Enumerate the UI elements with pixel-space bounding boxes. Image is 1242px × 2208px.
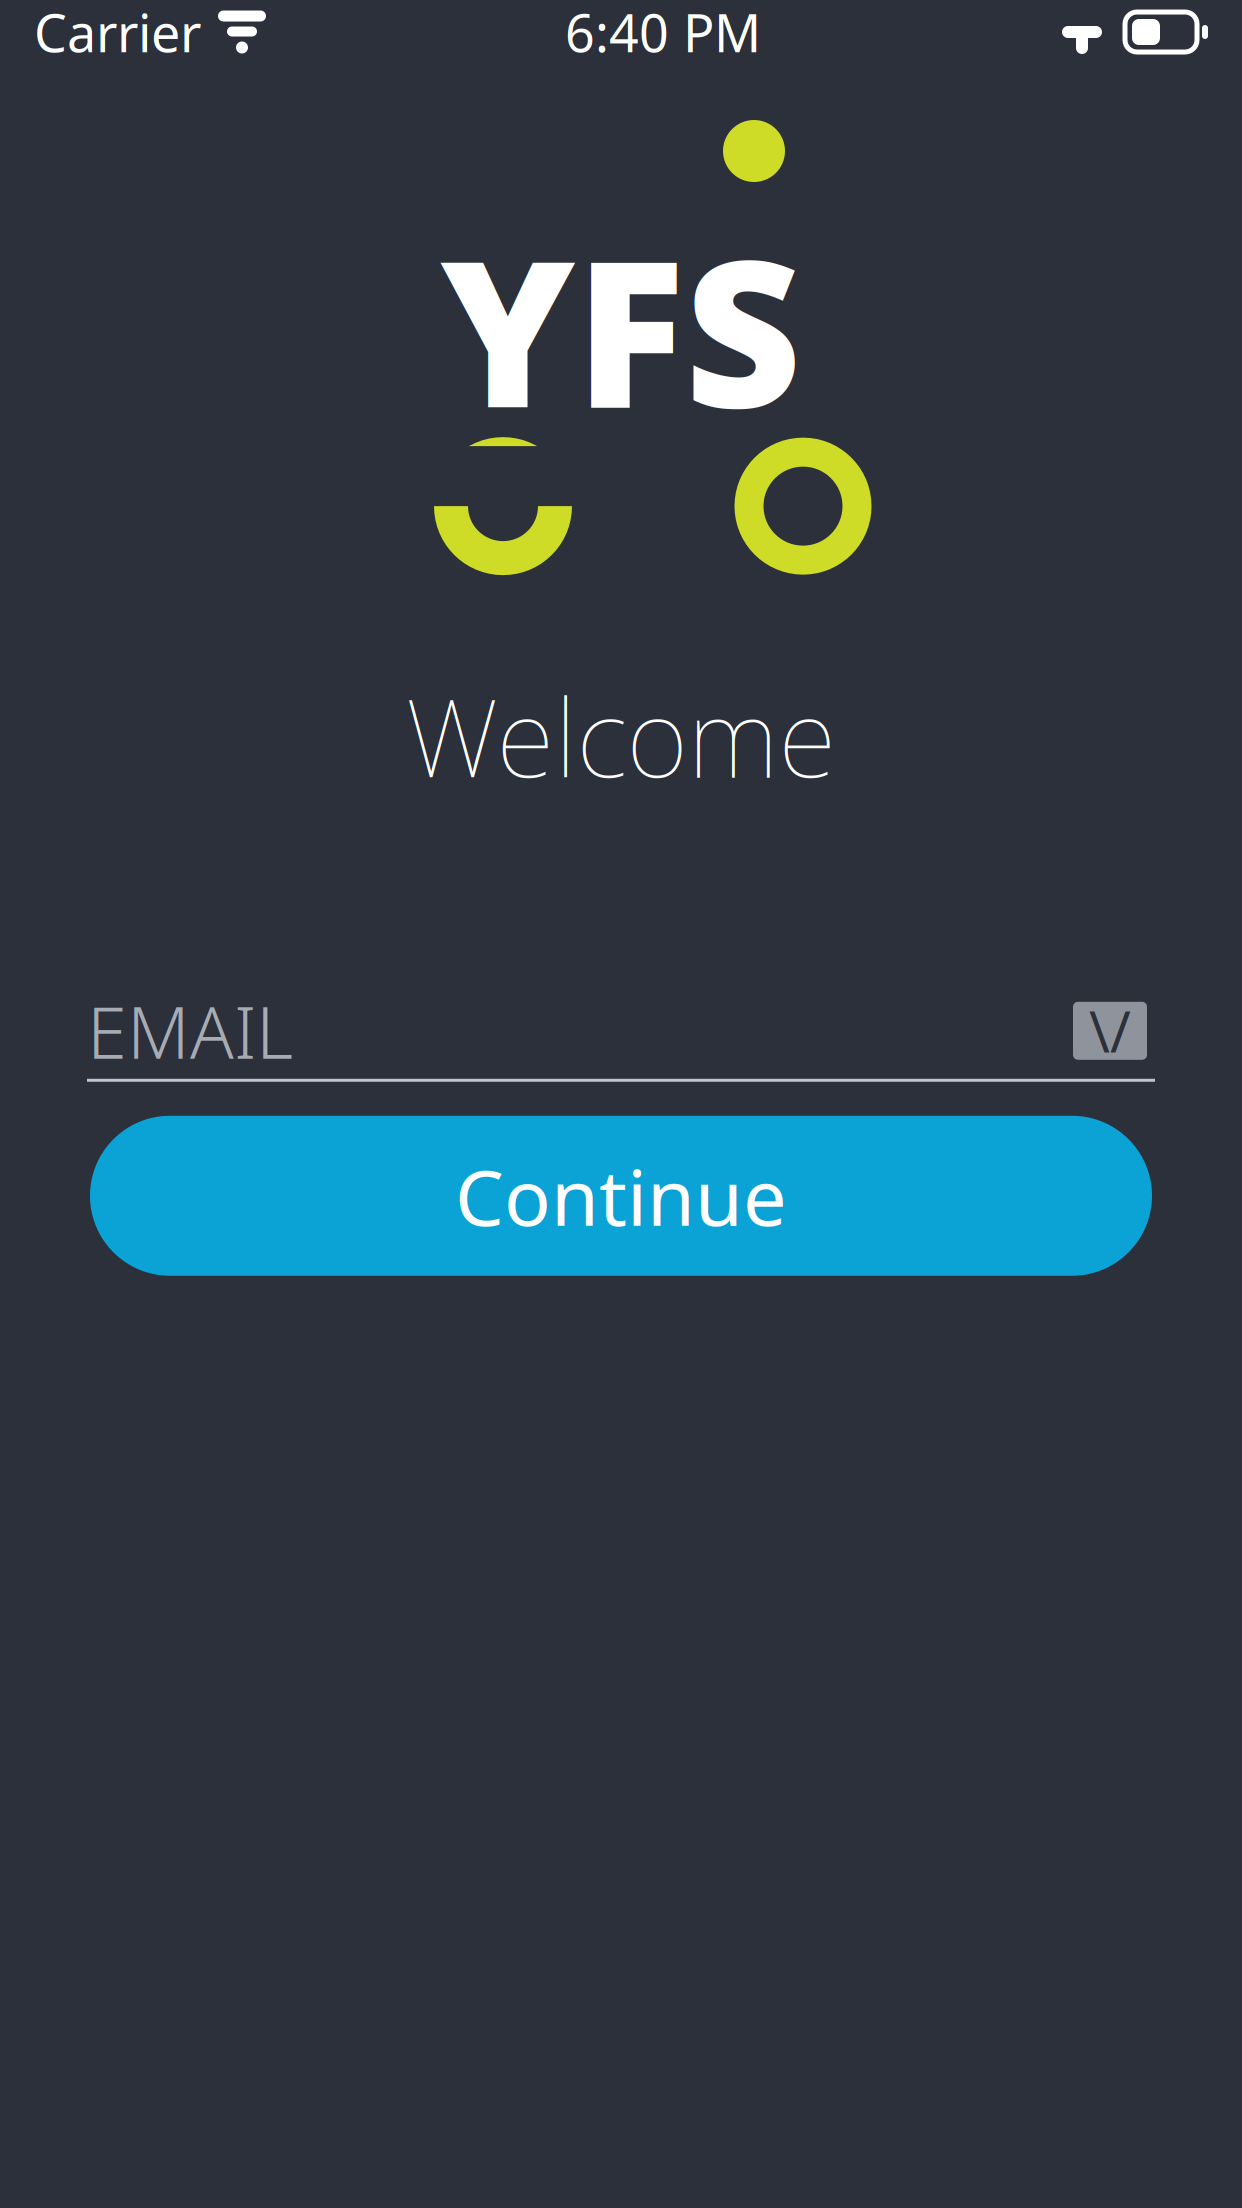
staticText: Welcome [405,665,836,807]
staticText: \/ [1089,994,1131,1068]
staticText: Carrier [34,0,201,67]
staticText: 6:40 PM [565,0,761,67]
button[interactable]: Continue [90,1116,1152,1276]
staticText: Continue [455,1144,787,1247]
staticText: EMAIL [87,983,293,1079]
button[interactable]: Email [1065,994,1155,1068]
staticText: YFS [440,194,801,463]
